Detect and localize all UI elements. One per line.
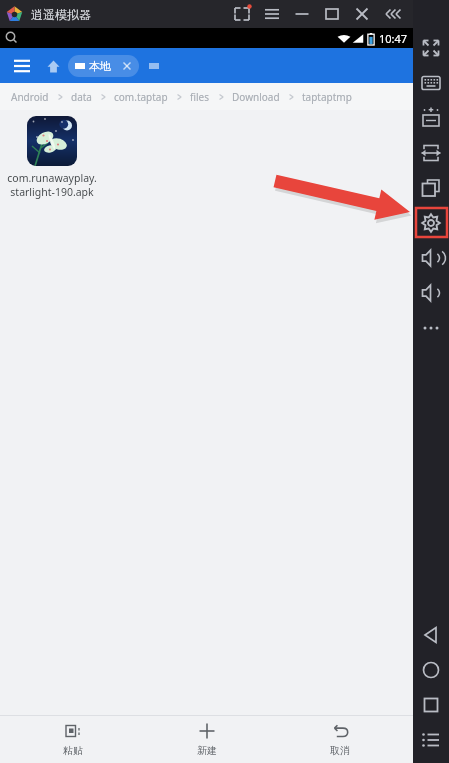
button[interactable]: Back [413, 617, 449, 652]
button[interactable]: files [184, 90, 216, 104]
button[interactable]: Task list [413, 722, 449, 757]
staticText: Download [232, 90, 280, 104]
button[interactable]: Screenshot [227, 0, 257, 28]
button[interactable]: taptaptmp [296, 90, 358, 104]
button[interactable]: Collapse [377, 0, 413, 28]
button[interactable]: Fullscreen [413, 30, 449, 65]
button[interactable]: Volume down [413, 275, 449, 310]
staticText: 取消 [330, 744, 350, 757]
button[interactable]: Install APK [413, 100, 449, 135]
button[interactable]: 粘贴 [13, 716, 133, 763]
button[interactable]: Minimize [287, 0, 317, 28]
button[interactable]: Keyboard [413, 65, 449, 100]
button[interactable]: com.taptap [108, 90, 174, 104]
staticText: com.taptap [114, 90, 168, 104]
button[interactable]: Close [347, 0, 377, 28]
button[interactable]: data [65, 90, 98, 104]
staticText: com.runawayplay.starlight-190.apk [5, 171, 99, 199]
button[interactable]: Recents [413, 687, 449, 722]
staticText: Android [11, 90, 49, 104]
staticText: 本地 [89, 59, 111, 73]
staticText: files [190, 90, 210, 104]
button[interactable]: Home [413, 652, 449, 687]
staticText: data [71, 90, 92, 104]
button[interactable]: More options [413, 310, 449, 345]
button[interactable]: Android [5, 90, 55, 104]
button[interactable]: com.runawayplay.starlight-190.apk [5, 116, 99, 199]
button[interactable]: Shake [413, 135, 449, 170]
staticText: 粘贴 [63, 744, 83, 757]
button[interactable]: Multi window [413, 170, 449, 205]
staticText: taptaptmp [302, 90, 352, 104]
button[interactable]: Maximize [317, 0, 347, 28]
staticText: 10:47 [379, 31, 408, 46]
button[interactable]: New tab [143, 55, 165, 77]
button[interactable]: Menu [257, 0, 287, 28]
staticText: 新建 [197, 744, 217, 757]
button[interactable]: Home [41, 54, 65, 78]
button[interactable]: Settings [413, 205, 449, 240]
button[interactable]: Volume up [413, 240, 449, 275]
button[interactable]: Menu [7, 51, 37, 81]
button[interactable]: 新建 [147, 716, 267, 763]
button[interactable]: 取消 [280, 716, 400, 763]
staticText: 逍遥模拟器 [31, 7, 91, 22]
button[interactable]: 本地 [68, 55, 139, 77]
button[interactable]: Download [226, 90, 286, 104]
